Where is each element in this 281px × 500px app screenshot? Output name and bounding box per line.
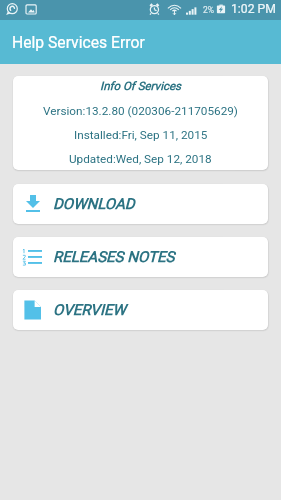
staticText: Updated:Wed, Sep 12, 2018 xyxy=(69,152,212,166)
staticText: Help Services Error xyxy=(12,33,145,51)
other: Releases notes xyxy=(21,245,45,269)
staticText: RELEASES NOTES xyxy=(53,248,175,266)
staticText: Version:13.2.80 (020306-211705629) xyxy=(43,104,238,118)
button[interactable]: Download xyxy=(13,184,268,224)
button[interactable]: Overview xyxy=(13,290,268,330)
staticText: Installed:Fri, Sep 11, 2015 xyxy=(74,128,208,142)
staticText: OVERVIEW xyxy=(53,301,126,319)
other: Overview xyxy=(21,298,45,322)
staticText: DOWNLOAD xyxy=(53,195,135,213)
button[interactable]: Releases notes xyxy=(13,237,268,277)
staticText: 1:02 PM xyxy=(231,2,276,16)
staticText: Info Of Services xyxy=(100,79,181,92)
other: Download xyxy=(21,192,45,216)
staticText: 2% xyxy=(203,5,215,15)
